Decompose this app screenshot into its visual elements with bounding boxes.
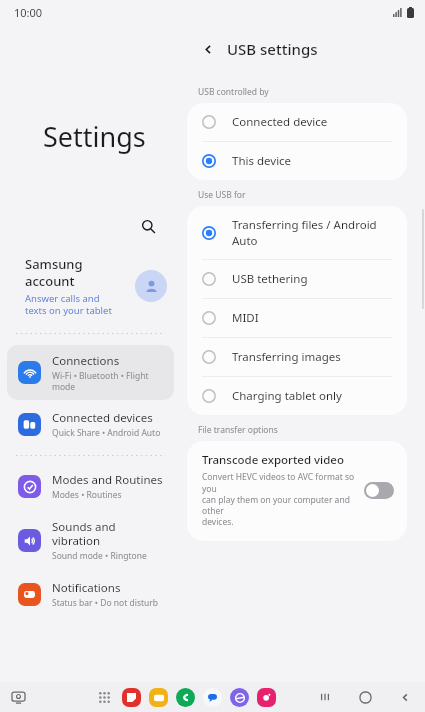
button[interactable]: Back: [195, 36, 221, 62]
staticText: Modes • Routines: [52, 489, 122, 501]
staticText: Answer calls and texts on your tablet: [25, 292, 112, 317]
button[interactable]: Camera: [257, 688, 276, 707]
button[interactable]: MIDI: [187, 299, 407, 337]
staticText: Charging tablet only: [232, 388, 342, 404]
staticText: Transcode exported video: [202, 452, 344, 468]
button[interactable]: Modes and Routines: [7, 464, 174, 509]
staticText: Sounds and vibration: [52, 519, 116, 549]
staticText: Connections: [52, 353, 120, 369]
staticText: Settings: [43, 118, 146, 155]
button[interactable]: Messages: [203, 688, 222, 707]
staticText: USB tethering: [232, 271, 308, 287]
button[interactable]: Charging tablet only: [187, 377, 407, 415]
button[interactable]: My Files: [149, 688, 168, 707]
button[interactable]: Transcode exported video: [187, 441, 407, 541]
staticText: 10:00: [14, 5, 43, 20]
button[interactable]: Connected device: [187, 103, 407, 141]
button[interactable]: Transferring files / Android Auto: [187, 206, 407, 259]
staticText: File transfer options: [198, 424, 278, 436]
staticText: This device: [232, 153, 292, 169]
staticText: Notifications: [52, 580, 121, 596]
staticText: Status bar • Do not disturb: [52, 597, 159, 609]
staticText: Use USB for: [198, 189, 246, 201]
button[interactable]: Transcode exported video toggle: [364, 482, 394, 499]
staticText: Connected devices: [52, 410, 153, 426]
button[interactable]: USB tethering: [187, 260, 407, 298]
button[interactable]: Transferring images: [187, 338, 407, 376]
button[interactable]: This device: [187, 142, 407, 180]
staticText: MIDI: [232, 310, 259, 326]
staticText: Transferring files / Android Auto: [232, 217, 377, 248]
button[interactable]: Phone: [176, 688, 195, 707]
button[interactable]: Connected devices: [7, 402, 174, 447]
staticText: Wi-Fi • Bluetooth • Flight mode: [52, 370, 149, 392]
button[interactable]: Connections: [7, 345, 174, 400]
button[interactable]: Notifications: [7, 572, 174, 617]
staticText: USB settings: [227, 39, 318, 59]
button[interactable]: Sounds and vibration: [7, 511, 174, 570]
button[interactable]: Recent screens: [7, 686, 29, 708]
button[interactable]: Internet: [230, 688, 249, 707]
button[interactable]: Notes: [122, 688, 141, 707]
staticText: Transferring images: [232, 349, 341, 365]
staticText: Convert HEVC videos to AVC format so you…: [202, 471, 356, 528]
button[interactable]: Home: [355, 687, 375, 707]
button[interactable]: Search: [133, 211, 163, 241]
staticText: Samsung account: [25, 255, 83, 290]
button[interactable]: Back: [395, 687, 415, 707]
staticText: USB controlled by: [198, 86, 269, 98]
staticText: Connected device: [232, 114, 328, 130]
staticText: Modes and Routines: [52, 472, 163, 488]
button[interactable]: Samsung account: [0, 251, 181, 321]
button[interactable]: Recents: [315, 687, 335, 707]
button[interactable]: Apps: [94, 687, 114, 707]
staticText: Sound mode • Ringtone: [52, 550, 147, 562]
staticText: Quick Share • Android Auto: [52, 427, 161, 439]
